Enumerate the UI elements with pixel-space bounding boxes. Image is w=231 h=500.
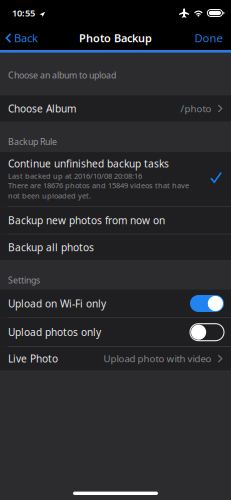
button[interactable]: Upload photos only: [0, 318, 231, 346]
staticText: Continue unfinished backup tasks: [8, 157, 169, 170]
staticText: Back: [14, 30, 38, 46]
staticText: Done: [194, 30, 222, 46]
staticText: Backup all photos: [8, 240, 94, 254]
staticText: Choose Album: [8, 102, 76, 115]
button[interactable]: Live Photo: [0, 347, 231, 370]
button[interactable]: Continue unfinished backup tasks: [0, 152, 231, 206]
staticText: 10:55: [12, 7, 35, 19]
staticText: /photo: [180, 102, 211, 115]
button[interactable]: Upload on Wi-Fi only: [0, 289, 231, 317]
staticText: Backup Rule: [8, 135, 57, 147]
button[interactable]: Backup all photos: [0, 234, 231, 260]
button[interactable]: Choose Album: [0, 95, 231, 121]
staticText: Backup new photos from now on: [8, 213, 165, 227]
staticText: Settings: [8, 274, 40, 286]
button[interactable]: Back: [0, 25, 46, 51]
staticText: Live Photo: [8, 352, 58, 365]
button[interactable]: Backup new photos from now on: [0, 207, 231, 234]
button[interactable]: Done: [186, 25, 231, 51]
staticText: Choose an album to upload: [8, 69, 116, 81]
staticText: Upload photos only: [8, 325, 101, 339]
staticText: Upload photo with video: [103, 352, 211, 365]
staticText: Last backed up at 2016/10/08 20:08:16: [8, 171, 142, 181]
staticText: Photo Backup: [79, 31, 152, 45]
staticText: Upload on Wi-Fi only: [8, 297, 106, 310]
staticText: There are 18676 photos and 15849 videos …: [8, 180, 189, 201]
